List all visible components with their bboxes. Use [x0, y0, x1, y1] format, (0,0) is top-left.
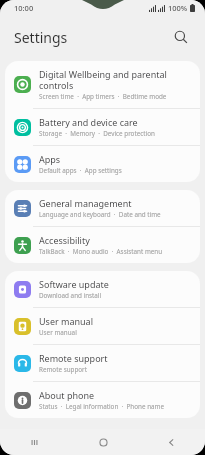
staticText: Digital Wellbeing and parental controls	[39, 68, 190, 91]
button[interactable]: Home	[69, 429, 137, 455]
button[interactable]: Apps	[5, 146, 200, 182]
button[interactable]: Back	[137, 429, 205, 455]
staticText: TalkBack · Mono audio · Assistant menu	[39, 247, 163, 256]
staticText: Software update	[39, 278, 109, 290]
staticText: Screen time · App timers · Bedtime mode	[39, 92, 167, 101]
staticText: Apps	[39, 153, 61, 165]
button[interactable]: Battery and device care	[5, 109, 200, 145]
staticText: User manual	[39, 315, 93, 327]
staticText: Battery and device care	[39, 116, 138, 128]
staticText: Default apps · App settings	[39, 166, 122, 175]
staticText: About phone	[39, 389, 95, 401]
staticText: User manual	[39, 328, 77, 337]
staticText: Remote support	[39, 352, 108, 364]
staticText: 100%	[168, 3, 188, 13]
button[interactable]: Accessibility	[5, 227, 200, 263]
staticText: 10:00	[14, 3, 34, 13]
staticText: General management	[39, 197, 132, 209]
button[interactable]: Recent apps	[0, 429, 69, 455]
button[interactable]: General management	[5, 190, 200, 226]
button[interactable]: Remote support	[5, 345, 200, 381]
staticText: Settings	[14, 28, 68, 47]
staticText: Remote support	[39, 365, 87, 374]
staticText: Download and install	[39, 291, 102, 300]
button[interactable]: About phone	[5, 382, 200, 418]
button[interactable]: Search	[167, 23, 195, 51]
button[interactable]: Digital Wellbeing and parental controls	[5, 61, 200, 108]
staticText: Status · Legal information · Phone name	[39, 402, 164, 411]
button[interactable]: Software update	[5, 271, 200, 307]
staticText: Accessibility	[39, 234, 90, 246]
button[interactable]: User manual	[5, 308, 200, 344]
staticText: Storage · Memory · Device protection	[39, 129, 155, 138]
staticText: Language and keyboard · Date and time	[39, 210, 161, 219]
